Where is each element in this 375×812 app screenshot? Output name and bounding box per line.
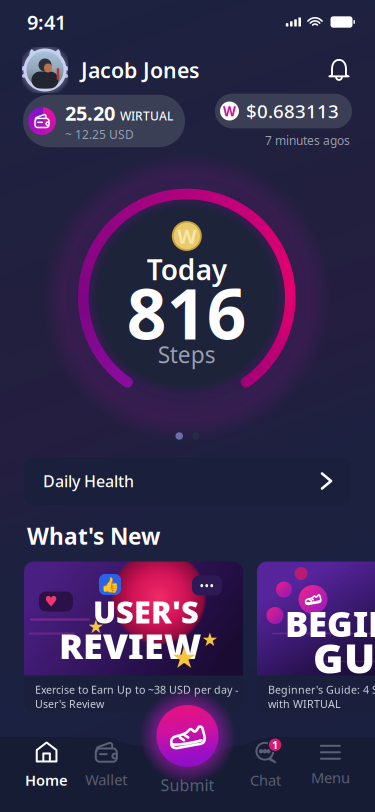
button[interactable]: Wallet: [75, 744, 137, 788]
staticText: USER'S: [93, 591, 199, 632]
staticText: ♥: [44, 593, 57, 610]
button[interactable]: W: [215, 94, 352, 128]
staticText: ★: [171, 641, 197, 674]
staticText: What's New: [27, 521, 160, 551]
staticText: W: [177, 223, 196, 249]
staticText: 👍: [101, 576, 119, 593]
staticText: Exercise to Earn Up to ~38 USD per day -…: [35, 682, 238, 711]
staticText: 816: [127, 266, 247, 359]
staticText: Beginner's Guide: 4 Steps with WIRTUAL: [268, 682, 375, 711]
staticText: W: [223, 102, 236, 120]
staticText: BEGIN: [285, 600, 375, 646]
staticText: •••: [199, 577, 214, 593]
staticText: ★: [87, 616, 104, 637]
button[interactable]: BEGIN: [257, 561, 375, 712]
button[interactable]: 25.20: [23, 95, 185, 147]
button[interactable]: Submit: [139, 688, 235, 784]
staticText: ★: [201, 629, 218, 650]
staticText: Steps: [158, 339, 216, 369]
button[interactable]: Daily Health: [24, 457, 351, 505]
staticText: Daily Health: [43, 470, 134, 492]
staticText: GUI: [313, 630, 375, 685]
staticText: REVIEW: [59, 622, 201, 669]
staticText: 7 minutes agos: [265, 132, 350, 148]
button[interactable]: 1: [235, 744, 297, 788]
staticText: Home: [25, 770, 68, 790]
button[interactable]: Menu: [299, 744, 361, 788]
staticText: Wallet: [85, 770, 127, 789]
staticText: Today: [147, 251, 227, 288]
staticText: $0.683113: [246, 99, 339, 123]
staticText: 25.20: [65, 100, 115, 126]
staticText: ~ 12.25 USD: [65, 126, 134, 142]
button[interactable]: ♥: [24, 561, 243, 712]
staticText: 1: [272, 738, 278, 752]
button[interactable]: Notifications: [320, 50, 358, 90]
staticText: WIRTUAL: [120, 108, 173, 124]
button[interactable]: Home: [16, 744, 78, 788]
staticText: 9:41: [27, 9, 66, 35]
staticText: Menu: [311, 768, 350, 787]
staticText: Jacob Jones: [81, 56, 200, 84]
staticText: Chat: [250, 770, 281, 790]
staticText: Submit: [160, 774, 214, 796]
